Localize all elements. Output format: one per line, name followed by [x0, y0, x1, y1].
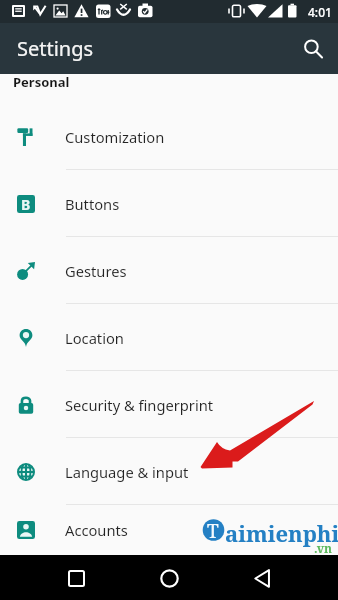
staticText: 4:01 [308, 4, 332, 20]
button[interactable]: Customization [0, 103, 338, 170]
staticText: .vn [314, 540, 332, 556]
button[interactable]: Location [0, 304, 338, 371]
staticText: T [207, 518, 219, 544]
button[interactable]: Recent apps [58, 560, 94, 596]
staticText: aimienphi [225, 518, 338, 548]
staticText: Language & input [65, 462, 189, 482]
button[interactable]: Language & input [0, 438, 338, 505]
staticText: Buttons [65, 194, 120, 214]
button[interactable]: Home [151, 560, 187, 596]
staticText: Accounts [65, 520, 128, 540]
button[interactable]: Security & fingerprint [0, 371, 338, 438]
staticText: Security & fingerprint [65, 395, 214, 415]
button[interactable]: Gestures [0, 237, 338, 304]
staticText: Personal [13, 73, 70, 91]
staticText: Customization [65, 127, 165, 147]
button[interactable]: Back [244, 560, 280, 596]
button[interactable]: B [0, 170, 338, 237]
staticText: Location [65, 328, 124, 348]
button[interactable]: Search [297, 33, 329, 65]
button[interactable]: Accounts [0, 505, 338, 555]
staticText: Settings [17, 35, 94, 62]
staticText: Gestures [65, 261, 127, 281]
staticText: B [21, 195, 31, 213]
